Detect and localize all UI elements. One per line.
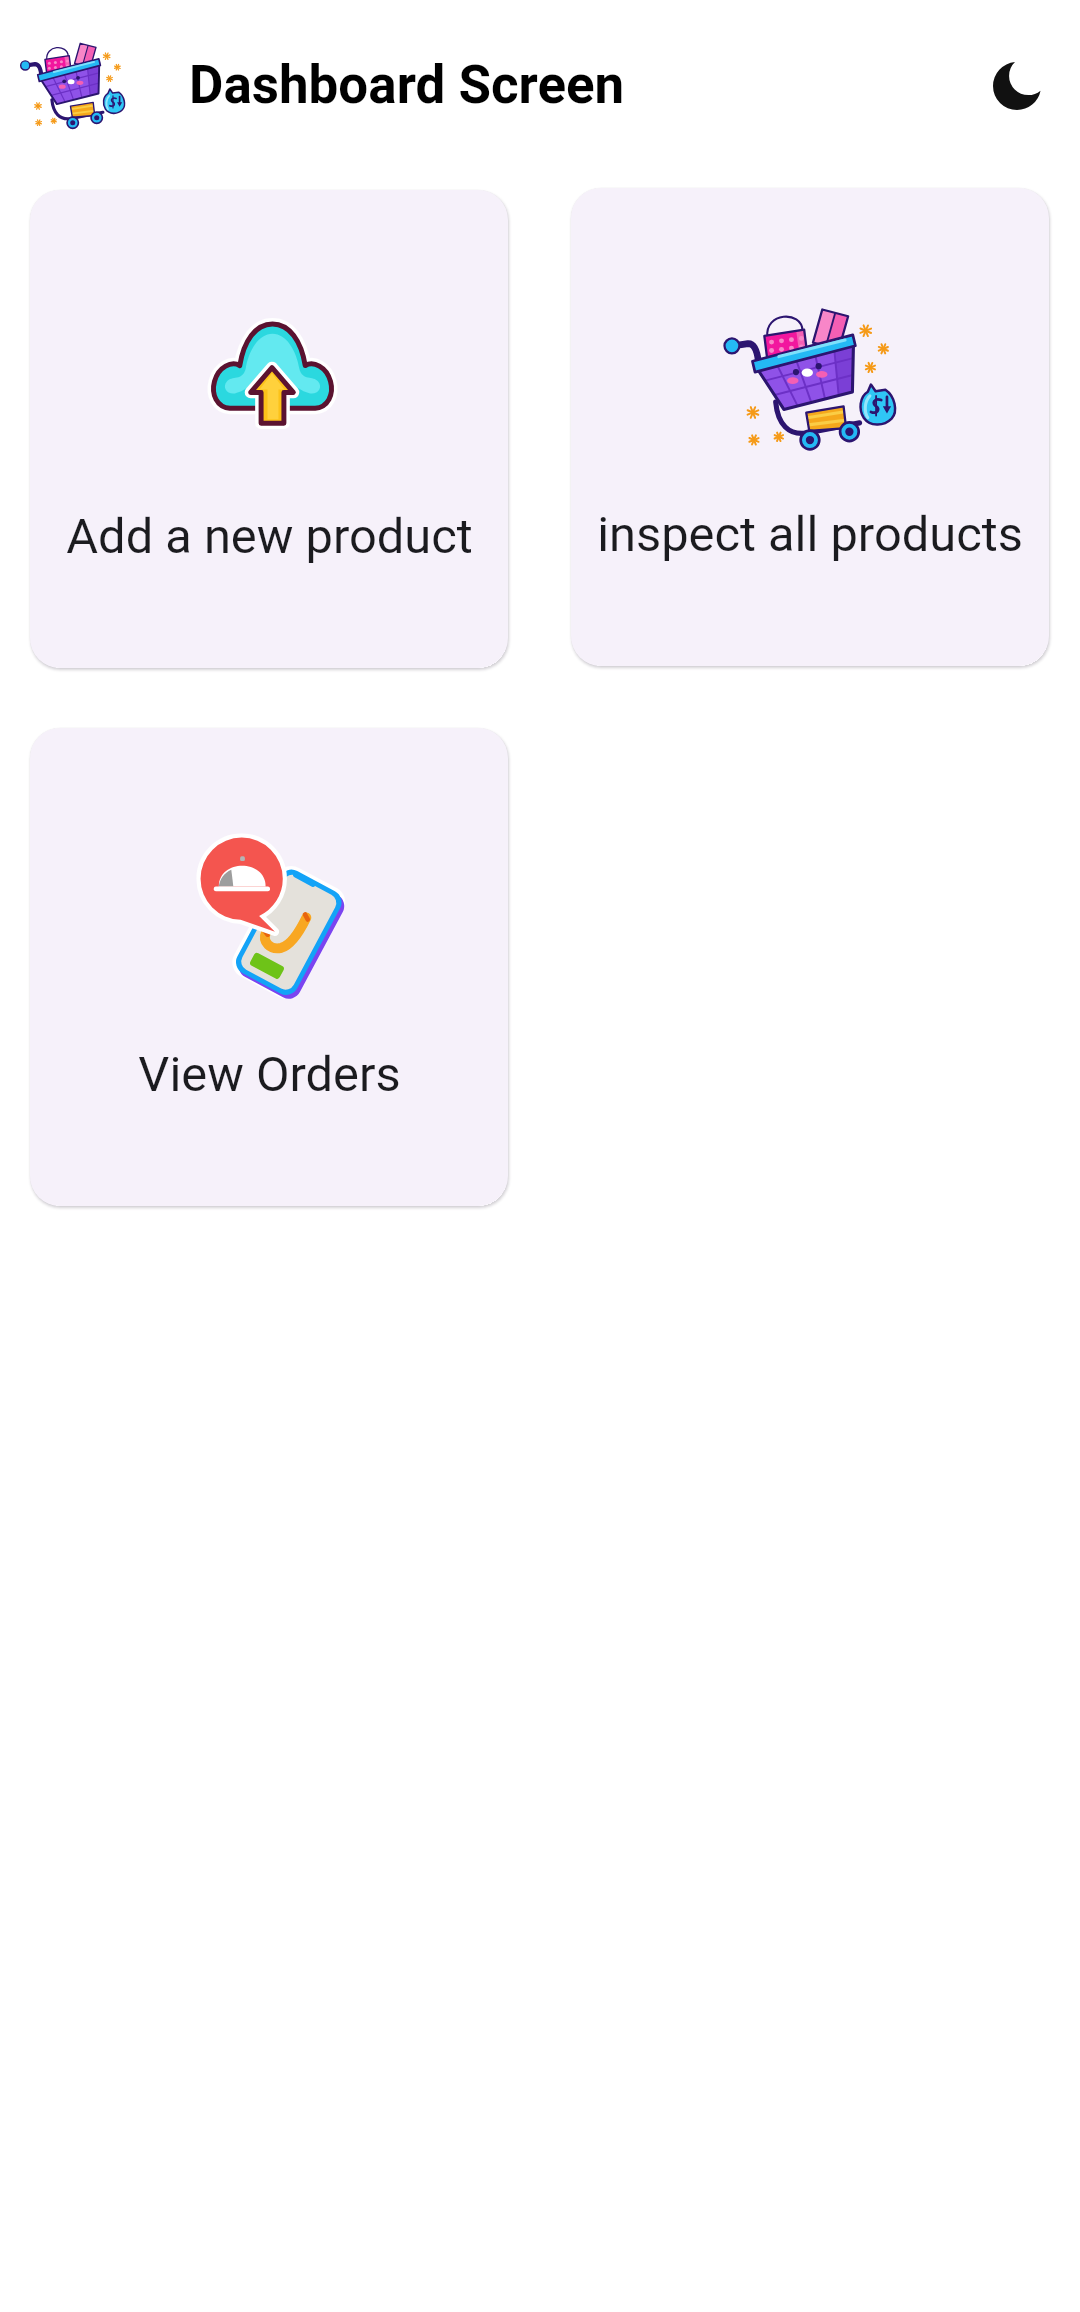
button[interactable]: Add a new product	[30, 190, 508, 668]
staticText: Add a new product	[66, 508, 473, 565]
button[interactable]: inspect all products	[571, 188, 1049, 666]
button[interactable]: View Orders	[30, 728, 508, 1206]
staticText: inspect all products	[597, 506, 1023, 563]
staticText: View Orders	[138, 1046, 401, 1103]
staticText: Dashboard Screen	[189, 54, 625, 116]
button[interactable]: Toggle dark mode	[963, 32, 1071, 140]
